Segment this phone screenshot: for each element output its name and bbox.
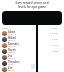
button[interactable]: Alexis bbox=[2, 30, 58, 36]
staticText: Level 12 bbox=[8, 33, 16, 36]
staticText: Level 6 bbox=[8, 69, 15, 72]
staticText: Iris bbox=[8, 54, 12, 57]
staticText: 6,905 bbox=[52, 50, 58, 53]
button[interactable]: Theodore bbox=[2, 60, 58, 66]
button[interactable]: Iris bbox=[2, 54, 58, 60]
staticText: 8,420 bbox=[52, 32, 58, 35]
staticText: Level 10 bbox=[8, 45, 16, 48]
staticText: Ravinder bbox=[8, 42, 19, 45]
staticText: Level 8 bbox=[8, 57, 15, 60]
button[interactable]: Mikael bbox=[2, 36, 58, 42]
staticText: 7,980 bbox=[52, 38, 58, 41]
staticText: Rank bbox=[2, 26, 8, 29]
button[interactable] bbox=[2, 11, 62, 25]
staticText: Theodore bbox=[8, 60, 20, 63]
button[interactable]: Ravinder bbox=[2, 42, 58, 48]
staticText: Mikael bbox=[8, 36, 17, 39]
staticText: Zoe bbox=[8, 66, 13, 69]
staticText: Alexis bbox=[8, 30, 16, 33]
staticText: Score bbox=[51, 26, 58, 29]
button[interactable]: Norah bbox=[2, 48, 58, 54]
staticText: Level 9 bbox=[8, 51, 15, 54]
staticText: 7,310 bbox=[52, 44, 58, 47]
button[interactable]: Zoe bbox=[2, 66, 58, 72]
staticText: Earn reward scores and levels for epic g… bbox=[0, 1, 64, 9]
staticText: Level 7 bbox=[8, 63, 15, 66]
staticText: Level 11 bbox=[8, 39, 16, 42]
staticText: Norah bbox=[8, 48, 16, 51]
